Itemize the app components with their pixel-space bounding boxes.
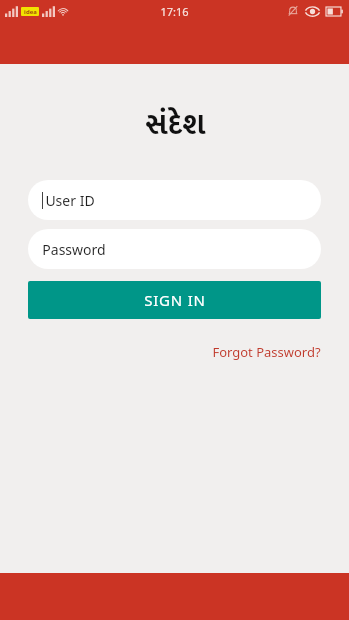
button[interactable]: Forgot Password? [210,341,323,363]
staticText: સંદેશ [145,100,205,150]
staticText: Password [42,240,106,259]
button[interactable]: Password [28,229,321,269]
staticText: User ID [45,191,95,210]
staticText: 17:16 [160,4,189,19]
staticText: idea [24,8,37,16]
staticText: Forgot Password? [212,343,321,361]
button[interactable]: User ID [28,180,321,220]
button[interactable]: SIGN IN [28,281,321,319]
staticText: SIGN IN [144,290,206,310]
